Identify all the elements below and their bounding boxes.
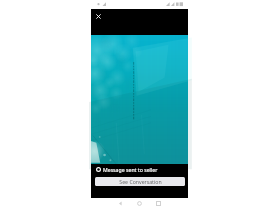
staticText: Message sent to seller [103,166,158,173]
button[interactable]: Home [130,198,149,209]
staticText: See Conversation [119,178,162,185]
button[interactable]: See Conversation [95,177,185,186]
button[interactable]: Recents [149,198,168,209]
button[interactable]: Back [111,198,130,209]
button[interactable]: Close [91,9,106,24]
